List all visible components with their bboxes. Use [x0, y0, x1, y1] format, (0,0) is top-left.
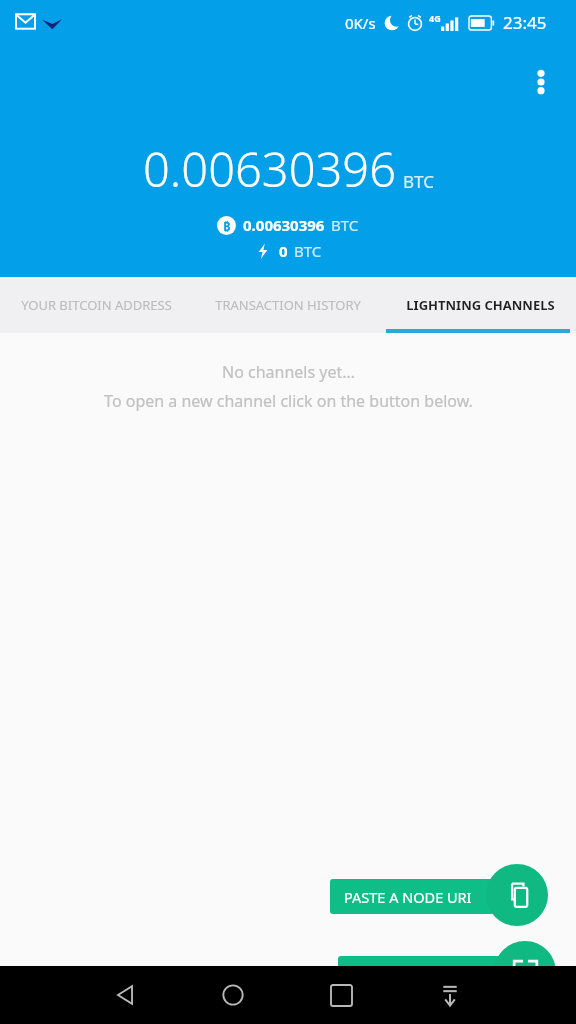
- button[interactable]: SCAN A NODE URI: [338, 941, 558, 1003]
- button[interactable]: More options: [517, 58, 565, 106]
- staticText: 4G: [429, 12, 441, 24]
- button[interactable]: Hide keyboard: [426, 971, 474, 1019]
- staticText: TRANSACTION HISTORY: [215, 296, 361, 314]
- staticText: PASTE A NODE URI: [344, 887, 472, 907]
- button[interactable]: Recent apps: [317, 971, 365, 1019]
- staticText: SCAN A NODE URI: [352, 964, 476, 984]
- staticText: To open a new channel click on the butto…: [104, 390, 473, 412]
- staticText: No channels yet…: [222, 361, 355, 383]
- button[interactable]: Back: [101, 971, 149, 1019]
- staticText: BTC: [294, 241, 322, 261]
- staticText: 23:45: [503, 11, 547, 34]
- button[interactable]: PASTE A NODE URI: [330, 864, 550, 926]
- other: SCAN A NODE URI: [494, 941, 556, 1003]
- button[interactable]: Home: [209, 971, 257, 1019]
- staticText: YOUR BITCOIN ADDRESS: [21, 296, 172, 314]
- staticText: LIGHTNING CHANNELS: [406, 296, 555, 314]
- button[interactable]: TRANSACTION HISTORY: [192, 277, 384, 333]
- staticText: BTC: [403, 170, 434, 193]
- button[interactable]: LIGHTNING CHANNELS: [384, 277, 576, 333]
- staticText: BTC: [331, 215, 359, 235]
- staticText: 0K/s: [345, 13, 376, 33]
- staticText: ₿: [223, 217, 231, 235]
- staticText: 0.00630396: [143, 137, 397, 201]
- staticText: 0.00630396: [243, 215, 325, 235]
- button[interactable]: YOUR BITCOIN ADDRESS: [0, 277, 192, 333]
- staticText: 0: [279, 241, 288, 261]
- other: PASTE A NODE URI: [486, 864, 548, 926]
